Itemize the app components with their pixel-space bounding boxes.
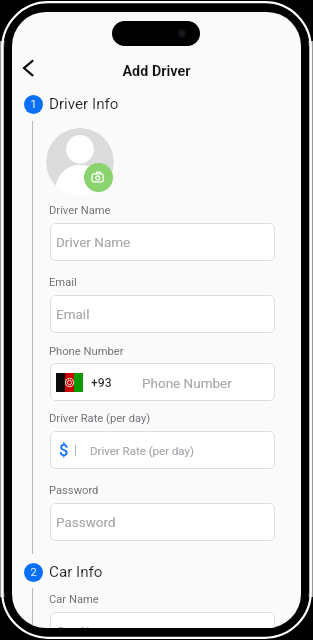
staticText: Email: [56, 306, 90, 322]
staticText: 1: [30, 98, 37, 111]
staticText: Password: [56, 514, 116, 530]
button[interactable]: Email: [50, 295, 275, 333]
button[interactable]: +93: [50, 363, 275, 401]
staticText: Driver Name: [56, 234, 131, 250]
staticText: Car Name: [56, 623, 117, 628]
staticText: Car Info: [49, 563, 103, 581]
button[interactable]: 2: [24, 562, 103, 582]
staticText: +93: [91, 376, 112, 390]
staticText: Driver Info: [49, 95, 119, 113]
button[interactable]: Change photo: [84, 163, 113, 192]
staticText: 2: [30, 566, 37, 579]
button[interactable]: Back: [16, 56, 40, 80]
staticText: $: [59, 441, 69, 460]
staticText: Driver Rate (per day): [49, 412, 151, 425]
staticText: Add Driver: [12, 63, 301, 80]
staticText: Car Name: [49, 593, 99, 606]
button[interactable]: Driver Name: [50, 223, 275, 261]
staticText: Phone Number: [142, 375, 232, 391]
staticText: Driver Rate (per day): [90, 444, 194, 457]
button[interactable]: Password: [50, 503, 275, 541]
button[interactable]: $: [50, 431, 275, 469]
staticText: Email: [49, 276, 77, 289]
button[interactable]: 1: [24, 94, 119, 114]
button[interactable]: Car Name: [50, 612, 275, 628]
staticText: Driver Name: [49, 204, 111, 217]
staticText: Phone Number: [49, 345, 124, 358]
staticText: Password: [49, 484, 99, 497]
